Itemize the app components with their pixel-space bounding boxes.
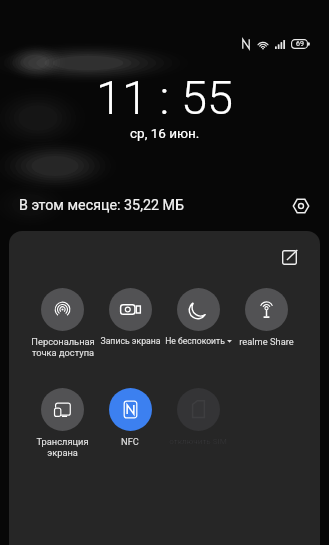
staticText: 69 — [296, 40, 304, 48]
button[interactable]: NFC — [96, 388, 164, 447]
staticText: Трансляция экрана — [36, 436, 89, 458]
staticText: Персональная точка доступа — [31, 336, 95, 358]
staticText: 11 : 55 — [96, 70, 234, 125]
staticText: Запись экрана — [100, 336, 161, 346]
button[interactable]: realme Share — [232, 288, 300, 347]
button[interactable]: Edit tiles — [281, 249, 297, 265]
button[interactable]: Запись экрана — [96, 288, 164, 346]
button[interactable]: Трансляция экрана — [29, 388, 96, 458]
staticText: В этом месяце: 35,22 МБ — [19, 197, 185, 214]
staticText: NFC — [121, 436, 139, 447]
staticText: отключить SIM — [169, 436, 227, 445]
staticText: Не беспокоить — [165, 336, 225, 346]
button[interactable]: Не беспокоить — [164, 288, 232, 346]
staticText: ср, 16 июн. — [130, 125, 200, 141]
button[interactable]: отключить SIM — [164, 388, 232, 445]
staticText: realme Share — [239, 336, 294, 347]
button[interactable]: Settings — [288, 193, 314, 219]
button[interactable]: Персональная точка доступа — [29, 288, 96, 358]
